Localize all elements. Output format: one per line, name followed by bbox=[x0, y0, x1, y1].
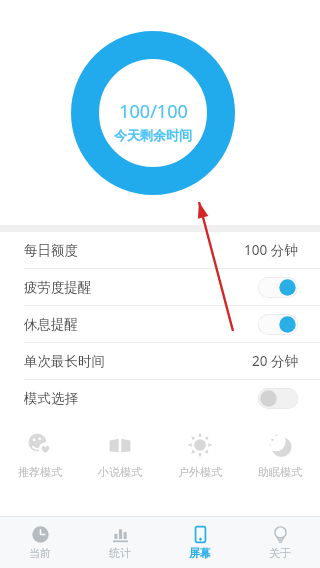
button[interactable]: 每日额度 bbox=[0, 232, 320, 268]
button[interactable]: 模式选择 off bbox=[258, 388, 298, 409]
staticText: 疲劳度提醒 bbox=[24, 279, 92, 296]
staticText: 助眠模式 bbox=[258, 465, 302, 479]
button[interactable]: 单次最长时间 bbox=[0, 343, 320, 379]
staticText: 户外模式 bbox=[178, 465, 222, 479]
staticText: 屏幕 bbox=[189, 546, 211, 560]
button[interactable]: 疲劳度提醒 on bbox=[258, 277, 298, 298]
staticText: 100 分钟 bbox=[244, 241, 298, 259]
button[interactable]: 推荐模式 bbox=[0, 416, 80, 494]
staticText: 100/100 bbox=[119, 99, 188, 124]
button[interactable]: 小说模式 bbox=[80, 416, 160, 494]
button[interactable]: 户外模式 bbox=[160, 416, 240, 494]
staticText: 休息提醒 bbox=[24, 316, 78, 333]
button[interactable]: 屏幕 bbox=[160, 517, 240, 568]
button[interactable]: 当前 bbox=[0, 517, 80, 568]
staticText: 统计 bbox=[109, 546, 131, 560]
staticText: 单次最长时间 bbox=[24, 353, 105, 370]
staticText: 20 分钟 bbox=[252, 352, 298, 370]
button[interactable]: 休息提醒 on bbox=[258, 314, 298, 335]
button[interactable]: 模式选择 bbox=[0, 380, 320, 416]
button[interactable]: 休息提醒 bbox=[0, 306, 320, 342]
staticText: 关于 bbox=[269, 546, 291, 560]
staticText: 当前 bbox=[29, 546, 51, 560]
button[interactable]: 助眠模式 bbox=[240, 416, 320, 494]
button[interactable]: 关于 bbox=[240, 517, 320, 568]
staticText: 今天剩余时间 bbox=[114, 127, 192, 143]
staticText: 推荐模式 bbox=[18, 465, 62, 479]
staticText: 模式选择 bbox=[24, 390, 78, 407]
staticText: 每日额度 bbox=[24, 242, 78, 259]
button[interactable]: 统计 bbox=[80, 517, 160, 568]
staticText: 小说模式 bbox=[98, 465, 142, 479]
button[interactable]: 疲劳度提醒 bbox=[0, 269, 320, 305]
